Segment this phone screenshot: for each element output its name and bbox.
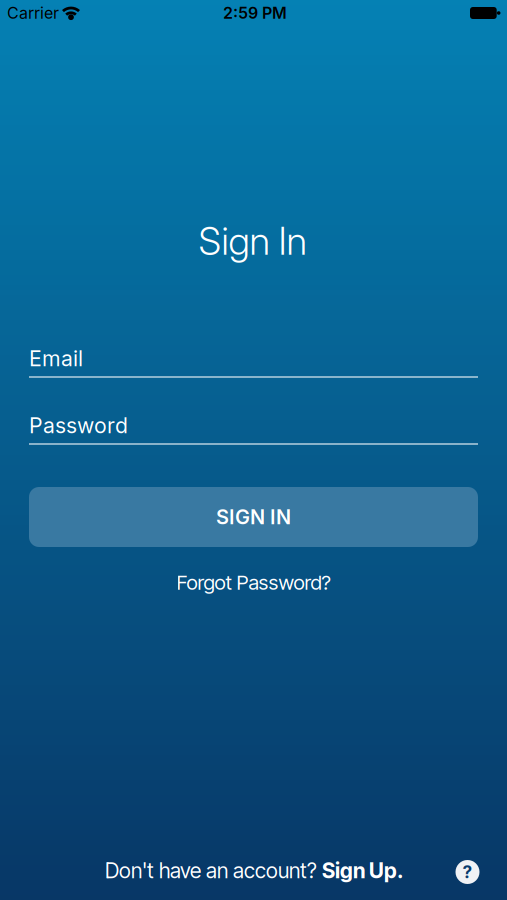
staticText: Don't have an account? <box>105 858 322 883</box>
staticText: Carrier <box>7 4 59 22</box>
staticText: 2:59 PM <box>223 4 287 22</box>
button[interactable]: SIGN IN <box>29 487 478 547</box>
button[interactable]: ? <box>455 860 479 884</box>
staticText: SIGN IN <box>216 505 291 529</box>
staticText: Sign Up. <box>322 858 403 883</box>
button[interactable]: Email <box>29 344 478 378</box>
staticText: Password <box>29 413 128 438</box>
staticText: Sign In <box>198 218 306 264</box>
button[interactable]: Password <box>29 411 478 445</box>
staticText: Email <box>29 346 83 371</box>
staticText: Forgot Password? <box>176 570 330 595</box>
button[interactable]: Forgot Password? <box>176 570 330 595</box>
button[interactable]: Don't have an account? <box>105 858 403 883</box>
staticText: ? <box>462 862 472 882</box>
